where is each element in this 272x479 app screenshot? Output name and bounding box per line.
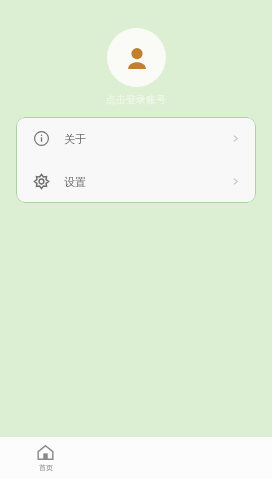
- button[interactable]: 设置: [16, 160, 256, 203]
- staticText: 关于: [64, 132, 86, 146]
- staticText: 设置: [64, 175, 86, 189]
- staticText: 点击登录账号: [106, 93, 166, 106]
- button[interactable]: Profile avatar: [107, 28, 166, 87]
- staticText: 首页: [39, 463, 53, 472]
- button[interactable]: 关于: [16, 117, 256, 160]
- button[interactable]: 首页: [0, 437, 91, 479]
